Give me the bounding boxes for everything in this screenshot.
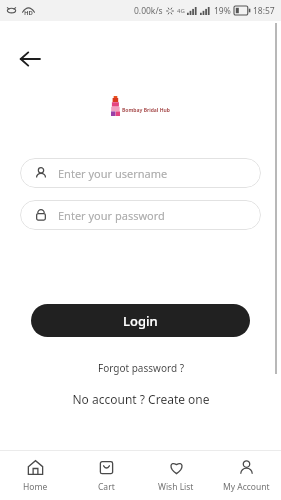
staticText: My Account: [223, 481, 270, 493]
button[interactable]: My Account: [211, 451, 281, 500]
button[interactable]: Home: [0, 451, 71, 500]
button[interactable]: Back: [10, 39, 50, 79]
button[interactable]: No account ? Create one: [0, 391, 281, 407]
staticText: Enter your username: [58, 166, 168, 181]
staticText: 4G: [177, 7, 185, 15]
staticText: Wish List: [158, 481, 194, 493]
staticText: Forgot password ?: [98, 361, 184, 375]
staticText: Home: [23, 481, 48, 493]
staticText: Login: [123, 312, 158, 330]
staticText: 19%: [214, 5, 231, 17]
button[interactable]: Enter your username: [20, 158, 261, 188]
button[interactable]: Login: [31, 304, 250, 337]
button[interactable]: Wish List: [141, 451, 211, 500]
button[interactable]: Cart: [71, 451, 141, 500]
staticText: 18:57: [253, 5, 275, 17]
staticText: Cart: [98, 481, 115, 493]
staticText: No account ? Create one: [72, 391, 210, 407]
button[interactable]: Forgot password ?: [0, 361, 281, 375]
button[interactable]: Enter your password: [20, 200, 261, 230]
staticText: Bombay Bridal Hub: [122, 107, 170, 114]
staticText: HD: [24, 9, 33, 17]
staticText: Enter your password: [58, 208, 165, 223]
staticText: 0.00k/s: [134, 5, 163, 17]
